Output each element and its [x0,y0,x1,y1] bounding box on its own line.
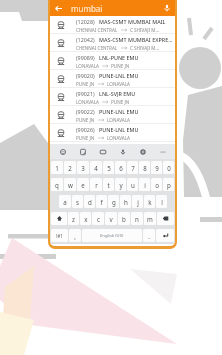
staticText: s [76,198,79,206]
button[interactable]: y [115,178,126,191]
button[interactable]: !#1 [51,229,68,242]
button[interactable]: English (US) [82,229,142,242]
staticText: t [107,181,110,189]
button[interactable]: 9 [151,161,162,174]
staticText: PUNE JN [111,63,130,69]
button[interactable]: v [105,212,117,225]
button[interactable]: 3 [77,161,89,174]
staticText: 0 [167,164,171,172]
button[interactable]: Shift [51,212,67,225]
staticText: r [95,181,98,189]
button[interactable]: d [84,195,95,208]
button[interactable]: z [68,212,79,225]
staticText: (99028) [76,144,95,151]
staticText: u [131,181,135,189]
staticText: 4 [94,164,98,172]
button[interactable]: a [59,195,71,208]
button[interactable]: 6 [115,161,126,174]
button[interactable]: (99020) [50,70,175,88]
button[interactable]: 4 [90,161,102,174]
staticText: (99020) [76,72,95,79]
button[interactable]: Enter [156,229,174,242]
staticText: i [144,181,146,189]
button[interactable]: p [163,178,174,191]
button[interactable]: Voice input [115,144,130,159]
button[interactable]: Backspace [157,212,174,225]
button[interactable]: Back [50,0,66,16]
staticText: 6 [119,164,123,172]
staticText: (12028) [76,18,95,25]
button[interactable]: 1 [51,161,63,174]
button[interactable]: h [120,195,131,208]
button[interactable]: x [80,212,91,225]
staticText: e [81,181,85,189]
staticText: l [161,198,163,206]
button[interactable]: c [92,212,104,225]
button[interactable]: , [69,229,81,242]
staticText: b [122,215,126,223]
staticText: LNL-PUNE EMU [99,54,139,61]
staticText: (99089) [76,54,95,61]
staticText: mumbai [71,3,103,14]
staticText: p [167,181,171,189]
staticText: 2 [68,164,72,172]
staticText: , [74,232,76,240]
staticText: f [100,198,103,206]
button[interactable]: o [151,178,162,191]
button[interactable]: i [139,178,150,191]
button[interactable]: e [77,178,89,191]
staticText: v [109,215,113,223]
button[interactable]: m [144,212,156,225]
button[interactable]: (99026) [50,124,175,142]
button[interactable]: u [127,178,138,191]
button[interactable]: g [108,195,119,208]
staticText: d [88,198,92,206]
staticText: (99021) [76,90,95,97]
button[interactable]: 0 [163,161,174,174]
button[interactable]: (12042) [50,34,175,52]
staticText: (99026) [76,126,95,133]
button[interactable]: (12028) [50,16,175,34]
button[interactable]: GIF [95,144,110,159]
button[interactable]: 7 [127,161,138,174]
staticText: 7 [131,164,135,172]
staticText: 3 [81,164,85,172]
button[interactable]: b [118,212,130,225]
button[interactable]: 2 [64,161,76,174]
staticText: LONAVALA [107,135,130,141]
button[interactable]: More options [155,144,170,159]
button[interactable]: (99089) [50,52,175,70]
button[interactable]: (99021) [50,88,175,106]
staticText: (99022) [76,108,95,115]
staticText: C SHIVAJI M... [130,27,160,33]
button[interactable]: . [143,229,155,242]
button[interactable]: n [131,212,143,225]
staticText: CHENNAI CENTRAL [76,45,118,51]
button[interactable]: (99022) [50,106,175,124]
button[interactable]: t [103,178,114,191]
button[interactable]: (99028) [50,142,175,160]
staticText: z [72,215,75,223]
button[interactable]: j [132,195,143,208]
button[interactable]: Stickers [75,144,90,159]
staticText: j [137,198,139,206]
button[interactable]: 8 [139,161,150,174]
button[interactable]: w [64,178,76,191]
button[interactable]: Settings [135,144,150,159]
staticText: 8 [143,164,147,172]
staticText: PUNE-LNL EMU [99,108,139,115]
button[interactable]: f [96,195,107,208]
button[interactable]: r [90,178,102,191]
button[interactable]: q [51,178,63,191]
staticText: LONAVALA [107,117,130,123]
button[interactable]: 5 [103,161,114,174]
staticText: MAS-CSMT MUMBAI EXPRE... [99,36,173,43]
button[interactable]: s [72,195,83,208]
staticText: n [135,215,139,223]
button[interactable]: Emoji [55,144,70,159]
button[interactable]: l [156,195,167,208]
button[interactable]: Voice search [158,0,175,16]
staticText: PUNE JN [76,135,95,141]
button[interactable]: k [144,195,155,208]
staticText: . [148,232,150,240]
